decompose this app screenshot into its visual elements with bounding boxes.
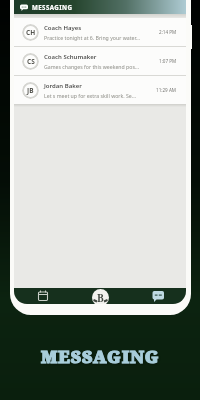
button[interactable]: CH [14, 18, 186, 46]
button[interactable] [36, 289, 50, 303]
staticText: 2:14 PM [159, 29, 177, 35]
staticText: CH [26, 28, 36, 37]
staticText: 11:29 AM [156, 87, 177, 93]
button[interactable]: MESSAGING [14, 0, 186, 14]
staticText: MESSAGING [41, 345, 160, 368]
staticText: MESSAGING [32, 3, 73, 11]
button[interactable]: B [92, 289, 109, 304]
staticText: Practice tonight at 6. Bring your water.… [44, 34, 140, 41]
staticText: 1:07 PM [159, 58, 177, 64]
button[interactable] [151, 290, 166, 304]
staticText: Let s meet up for extra skill work. Se..… [44, 92, 136, 99]
staticText: Jordan Baker [44, 82, 82, 90]
staticText: JB [27, 86, 34, 95]
staticText: CS [27, 57, 35, 66]
staticText: Games changes for this weekend pos... [44, 63, 140, 70]
staticText: B [97, 291, 104, 304]
button[interactable]: JB [14, 76, 186, 104]
staticText: Coach Schumaker [44, 53, 97, 61]
staticText: MESSAGING [41, 345, 160, 368]
button[interactable]: CS [14, 47, 186, 75]
staticText: Coach Hayes [44, 24, 82, 32]
